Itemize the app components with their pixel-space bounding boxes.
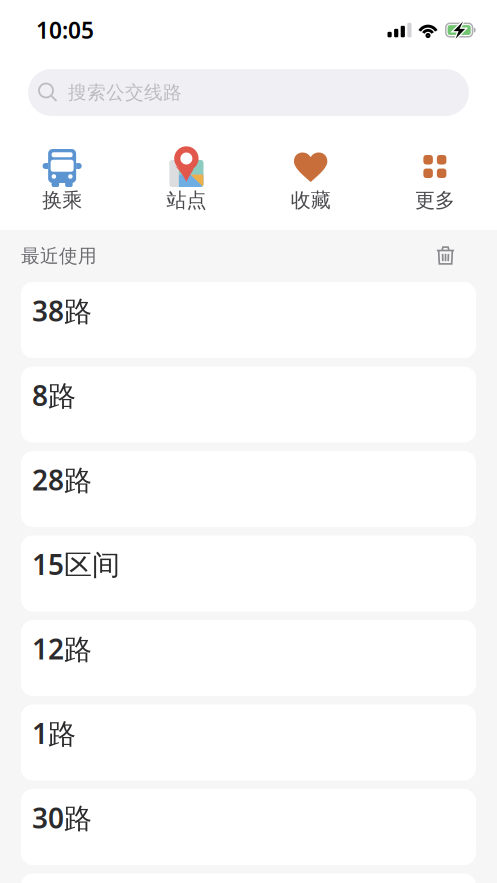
staticText: 收藏: [291, 188, 331, 213]
button[interactable]: 38路: [21, 282, 476, 358]
staticText: 12路: [32, 630, 92, 667]
button[interactable]: 搜索公交线路: [28, 69, 469, 116]
button[interactable]: 站点: [124, 149, 248, 213]
staticText: 换乘: [42, 188, 82, 213]
button[interactable]: 30路: [21, 789, 476, 865]
staticText: 15区间: [32, 545, 120, 583]
button[interactable]: 15区间: [21, 535, 476, 611]
button[interactable]: 12路: [21, 620, 476, 696]
staticText: 28路: [32, 461, 92, 498]
button[interactable]: 8路: [21, 366, 476, 442]
button[interactable]: Clear recent: [436, 245, 476, 266]
staticText: 搜索公交线路: [68, 81, 182, 104]
staticText: 站点: [166, 188, 206, 213]
staticText: 10:05: [36, 15, 94, 45]
button[interactable]: 换乘: [0, 149, 124, 213]
button[interactable]: 收藏: [248, 149, 373, 213]
staticText: 更多: [415, 188, 455, 213]
staticText: 1路: [32, 714, 76, 752]
button[interactable]: 更多: [373, 149, 497, 213]
staticText: 最近使用: [21, 244, 97, 267]
staticText: 8路: [32, 376, 76, 414]
button[interactable]: 28路: [21, 451, 476, 527]
staticText: 38路: [32, 292, 92, 329]
staticText: 30路: [32, 799, 92, 836]
button[interactable]: 1路: [21, 704, 476, 780]
